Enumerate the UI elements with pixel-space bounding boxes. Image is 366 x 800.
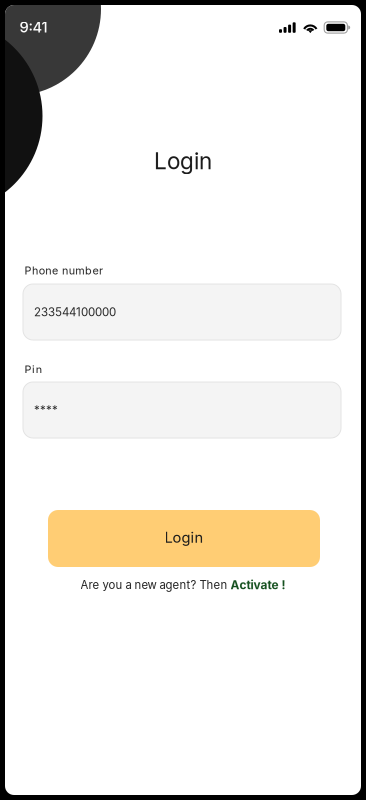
staticText: Pin <box>24 363 42 376</box>
staticText: Phone number <box>24 264 103 277</box>
button[interactable]: Login <box>48 510 320 567</box>
staticText: Login <box>154 147 212 175</box>
staticText: **** <box>34 403 58 417</box>
staticText: Activate ! <box>230 578 285 592</box>
staticText: 233544100000 <box>34 305 116 319</box>
staticText: Are you a new agent? Then <box>80 578 230 592</box>
staticText: 9:41 <box>19 18 47 36</box>
button[interactable]: Are you a new agent? Then <box>23 577 343 593</box>
staticText: Login <box>164 529 203 546</box>
